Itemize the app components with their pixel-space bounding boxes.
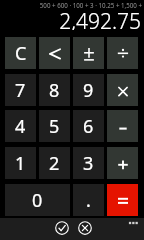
button[interactable]: Accept — [53, 219, 70, 236]
button[interactable]: Clear — [5, 37, 36, 69]
staticText: 4 — [15, 114, 26, 139]
button[interactable]: Plus — [107, 147, 138, 179]
button[interactable]: 9 — [73, 74, 104, 106]
button[interactable]: 0 — [5, 184, 70, 216]
staticText: 2 — [49, 151, 60, 176]
button[interactable]: Multiply — [107, 74, 138, 106]
button[interactable]: 5 — [39, 110, 70, 142]
staticText: 3 — [83, 151, 94, 176]
staticText: 8 — [49, 78, 60, 103]
button[interactable]: Minus — [107, 110, 138, 142]
button[interactable]: Cancel — [76, 219, 93, 236]
staticText: 0 — [32, 188, 43, 213]
button[interactable]: Equals — [107, 184, 138, 216]
staticText: 1 — [15, 151, 26, 176]
button[interactable]: Backspace — [39, 37, 70, 69]
button[interactable]: Divide — [107, 37, 138, 69]
button[interactable]: 8 — [39, 74, 70, 106]
staticText: C — [15, 41, 27, 66]
button[interactable]: 4 — [5, 110, 36, 142]
button[interactable]: 3 — [73, 147, 104, 179]
button[interactable]: 6 — [73, 110, 104, 142]
button[interactable]: More options — [125, 215, 143, 231]
staticText: 5 — [49, 114, 60, 139]
button[interactable]: Plus minus — [73, 37, 104, 69]
staticText: 7 — [15, 78, 26, 103]
button[interactable]: 2 — [39, 147, 70, 179]
button[interactable]: 1 — [5, 147, 36, 179]
staticText: 2,492.75 — [59, 7, 141, 30]
button[interactable]: Decimal point — [73, 184, 104, 216]
staticText: . — [86, 188, 91, 213]
staticText: 9 — [83, 78, 94, 103]
button[interactable]: 7 — [5, 74, 36, 106]
staticText: 6 — [83, 114, 94, 139]
staticText: 500 + 600 · 100 + 3 · 10.25 + 1,500 + — [39, 1, 142, 9]
